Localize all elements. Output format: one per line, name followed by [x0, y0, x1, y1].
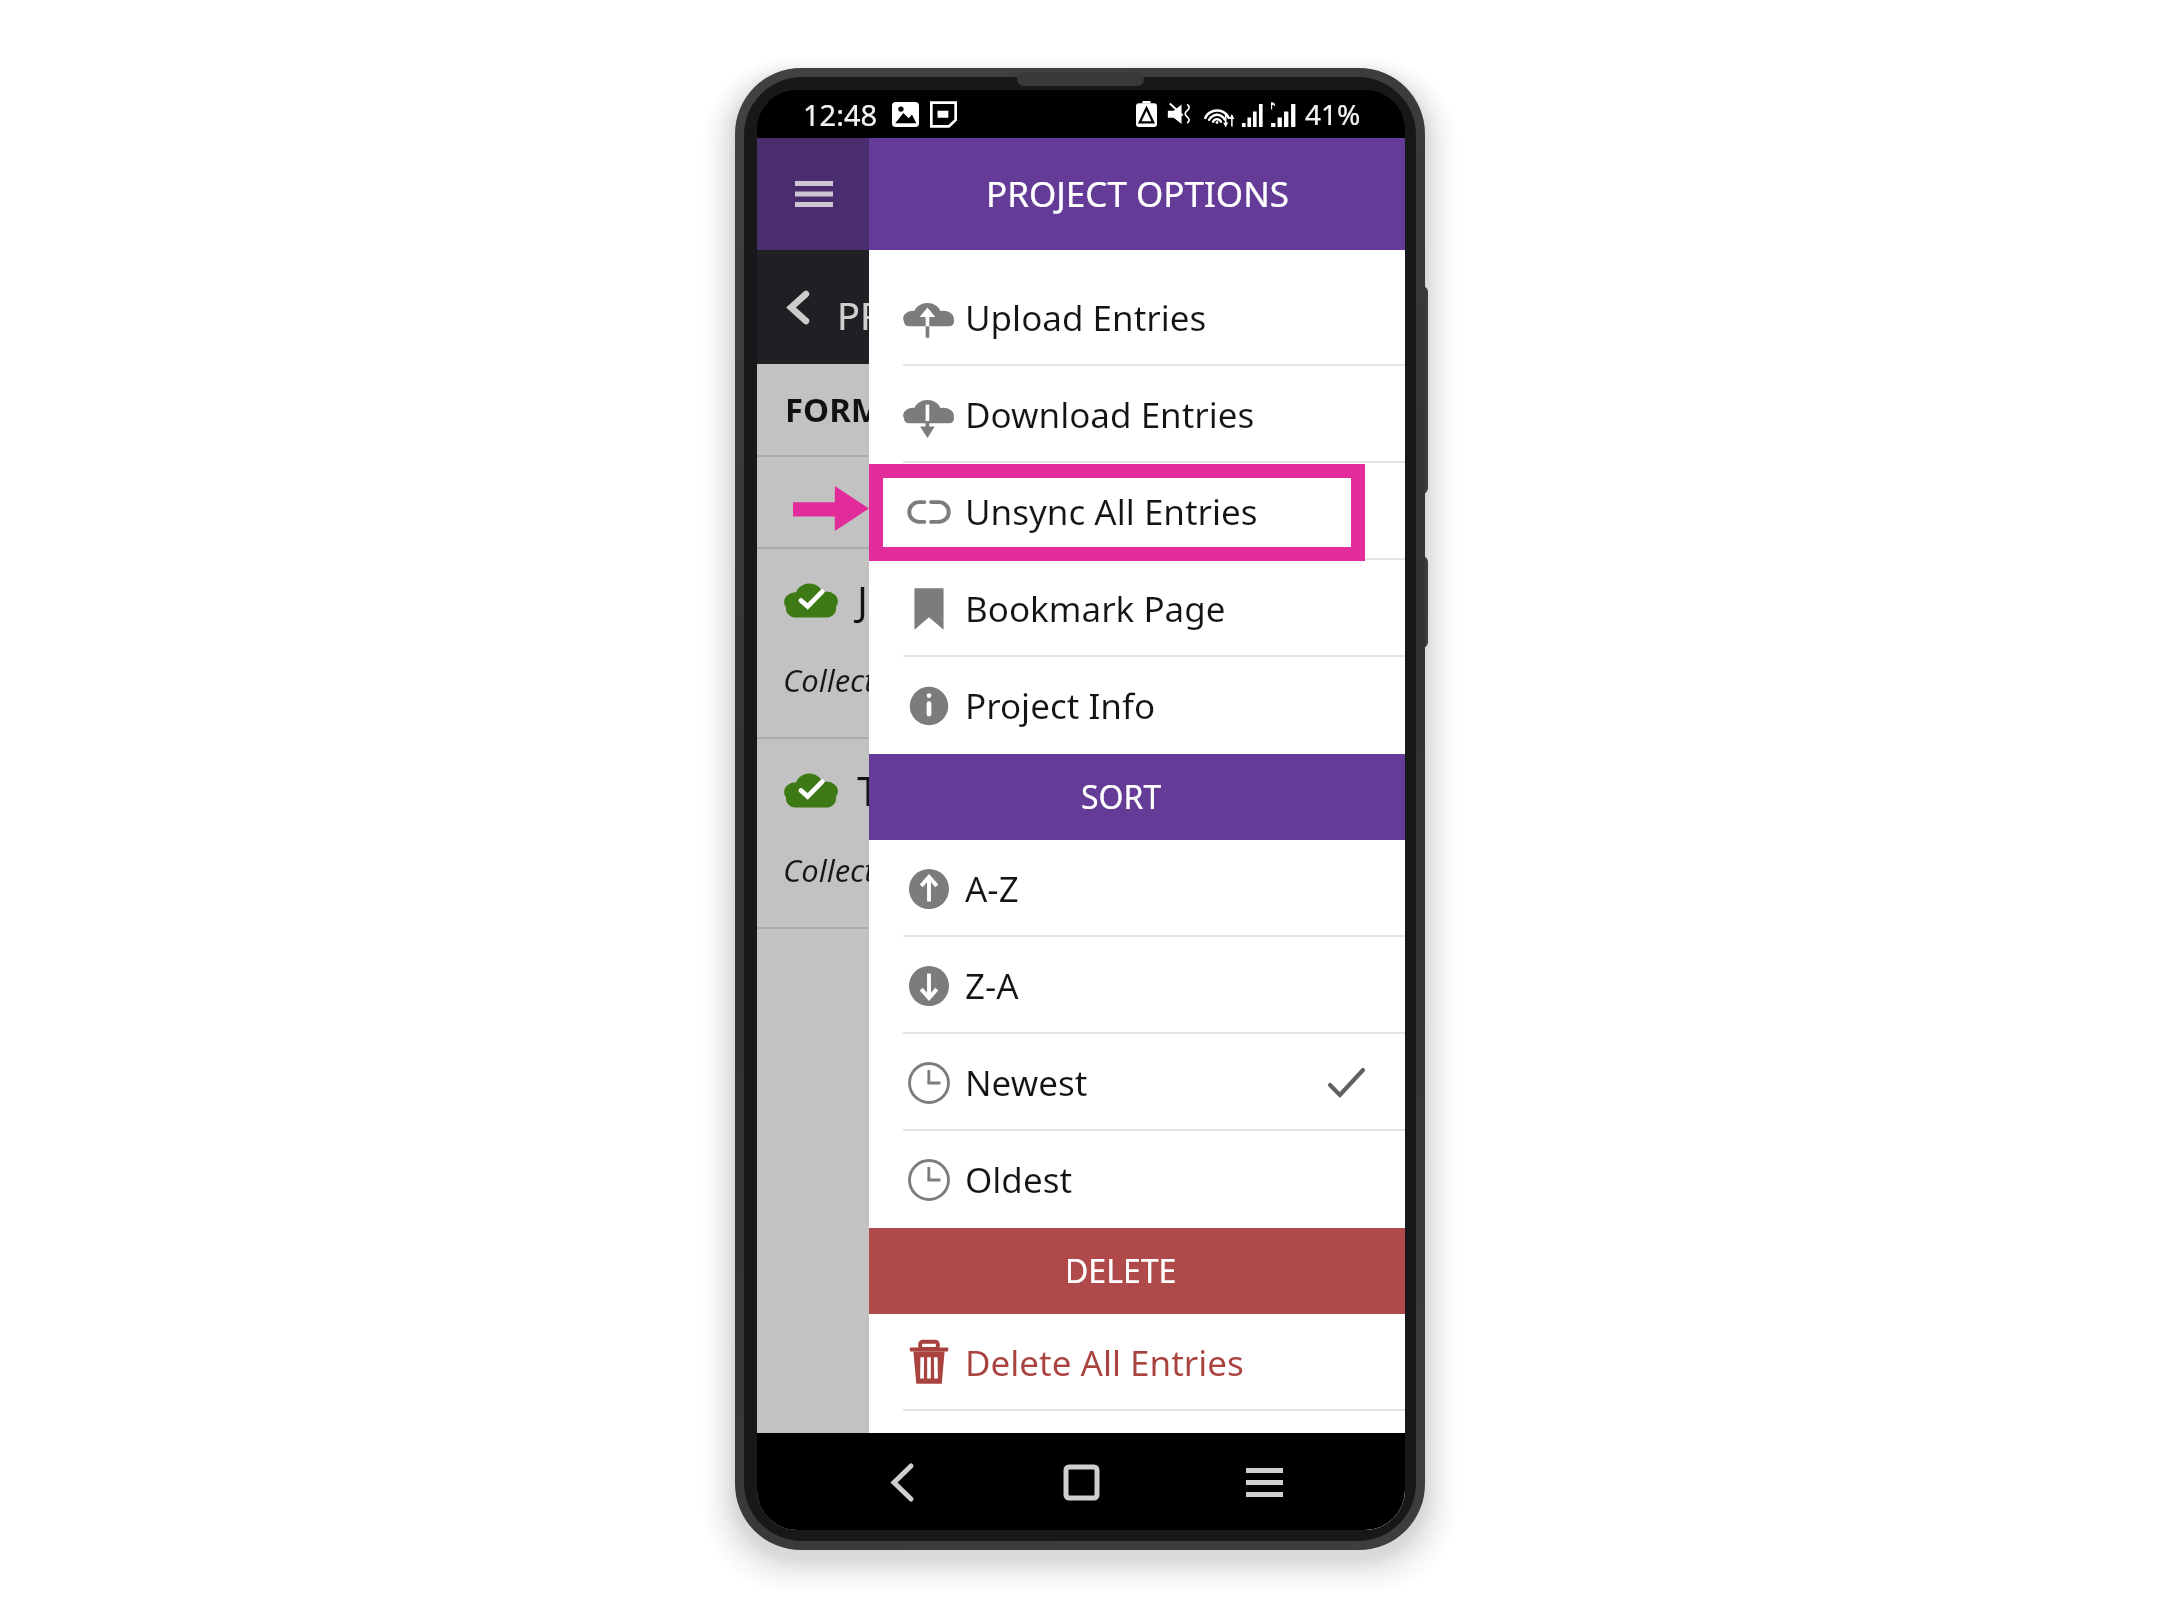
staticText: 12:48	[803, 95, 878, 134]
staticText: Upload Entries	[965, 294, 1207, 342]
staticText: Delete All Entries	[965, 1339, 1244, 1387]
button[interactable]: Jan Form	[757, 549, 1405, 737]
button[interactable]: A-Z	[869, 840, 1405, 937]
button[interactable]: Home	[1041, 1442, 1121, 1522]
staticText: DELETE	[1065, 1249, 1177, 1293]
staticText: Newest	[965, 1059, 1088, 1107]
staticText: Test Form	[857, 763, 1042, 817]
staticText: FORMS	[785, 387, 901, 432]
staticText: Oldest	[965, 1156, 1073, 1204]
staticText: Z-A	[965, 962, 1019, 1010]
button[interactable]: Test Form	[757, 739, 1405, 927]
button[interactable]: Open navigation menu	[765, 154, 863, 234]
staticText: Unsync All Entries	[965, 488, 1258, 536]
button[interactable]: Unsync All Entries	[869, 463, 1405, 560]
button[interactable]: Back	[862, 1442, 942, 1522]
staticText: Jan Form	[857, 573, 1025, 627]
staticText: PROJECT FORMS	[837, 289, 1129, 341]
staticText: Collected: 0	[783, 849, 941, 891]
button[interactable]: Navigate up	[773, 272, 837, 342]
staticText: 41%	[1305, 95, 1361, 133]
staticText: A-Z	[965, 865, 1019, 913]
button[interactable]: Project Info	[869, 657, 1405, 754]
staticText: SORT	[1081, 775, 1162, 819]
staticText: Bookmark Page	[965, 585, 1226, 633]
button[interactable]: Newest	[869, 1034, 1405, 1131]
button[interactable]: Download Entries	[869, 366, 1405, 463]
staticText: Download Entries	[965, 391, 1255, 439]
button[interactable]: Delete All Entries	[869, 1314, 1405, 1411]
button[interactable]: Upload Entries	[869, 269, 1405, 366]
button[interactable]: SORT	[869, 754, 1405, 840]
button[interactable]: Bookmark Page	[869, 560, 1405, 657]
button[interactable]: Recent apps	[1224, 1442, 1304, 1522]
staticText: PROJECT OPTIONS	[986, 170, 1289, 218]
staticText: Collected: 0	[783, 659, 941, 701]
button[interactable]: DELETE	[869, 1228, 1405, 1314]
staticText: Project Info	[965, 682, 1156, 730]
button[interactable]: Oldest	[869, 1131, 1405, 1228]
button[interactable]: Z-A	[869, 937, 1405, 1034]
